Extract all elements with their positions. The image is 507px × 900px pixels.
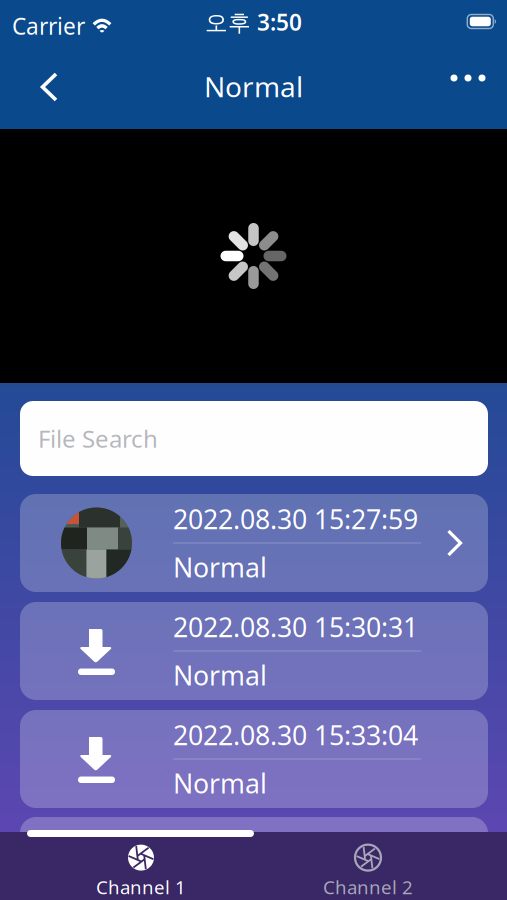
button[interactable]: Channel 1 (51, 841, 231, 900)
staticText: File Search (38, 423, 158, 454)
staticText: Channel 2 (323, 875, 413, 899)
staticText: Carrier (12, 11, 85, 41)
staticText: 2022.08.30 15:27:59 (173, 501, 418, 536)
button[interactable]: Channel 2 (278, 841, 458, 900)
button[interactable]: 2022.08.30 15:36:12 (20, 817, 488, 900)
button[interactable]: 2022.08.30 15:30:31 (20, 602, 488, 700)
staticText: 2022.08.30 15:33:04 (173, 717, 418, 752)
staticText: Normal (204, 68, 303, 105)
staticText: Normal (173, 765, 267, 801)
staticText: Normal (173, 657, 267, 693)
staticText: Normal (173, 549, 267, 585)
staticText: 2022.08.30 15:30:31 (173, 609, 418, 644)
staticText: Normal (173, 872, 267, 900)
button[interactable]: 2022.08.30 15:27:59 (20, 494, 488, 592)
staticText: 2022.08.30 15:36:12 (173, 824, 418, 859)
button[interactable]: Back (18, 57, 80, 117)
staticText: 오후 3:50 (205, 7, 302, 37)
button[interactable]: 2022.08.30 15:33:04 (20, 710, 488, 808)
button[interactable]: More (440, 52, 496, 104)
button[interactable]: File Search (20, 401, 488, 476)
staticText: Channel 1 (96, 875, 186, 899)
